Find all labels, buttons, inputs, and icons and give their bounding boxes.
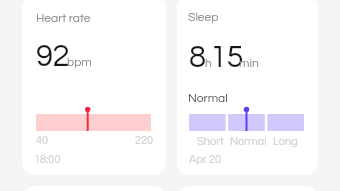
staticText: 220	[135, 135, 154, 146]
staticText: bpm	[67, 56, 92, 68]
staticText: min	[239, 57, 259, 69]
staticText: Normal	[230, 136, 267, 147]
staticText: Normal	[188, 92, 228, 104]
staticText: Sleep	[188, 11, 219, 23]
staticText: Apr 20	[189, 154, 222, 165]
staticText: Long	[273, 136, 298, 147]
button[interactable]: Heart rate	[22, 0, 166, 175]
staticText: Heart rate	[36, 12, 91, 24]
staticText: 92	[36, 41, 69, 73]
staticText: Short	[197, 136, 224, 147]
staticText: 18:00	[34, 154, 61, 165]
staticText: 40	[36, 135, 49, 146]
staticText: 15	[210, 42, 243, 74]
staticText: h	[205, 57, 212, 69]
staticText: 8	[189, 42, 206, 74]
button[interactable]: Sleep	[177, 0, 318, 175]
